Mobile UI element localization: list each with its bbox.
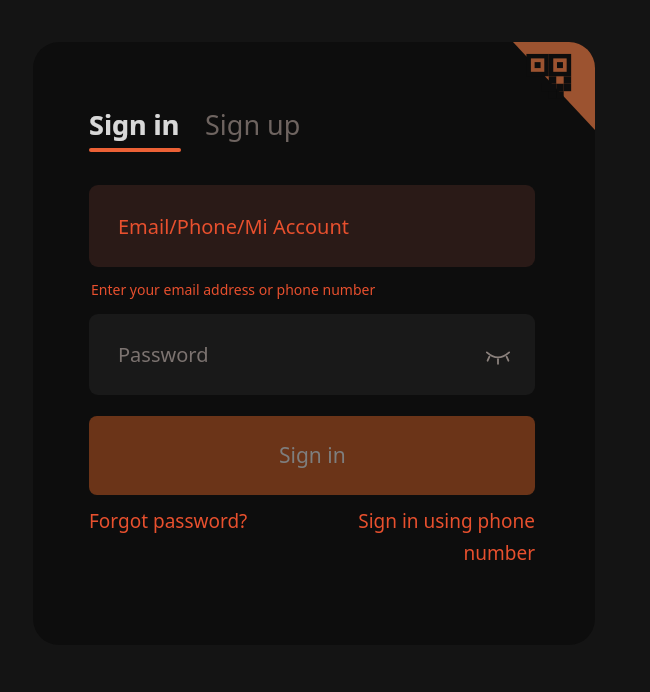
staticText: Sign in using phone number [335, 508, 535, 566]
button[interactable]: Forgot password? [89, 508, 248, 534]
button[interactable]: Sign in [89, 106, 181, 152]
button[interactable]: Sign in [89, 416, 535, 495]
staticText: Sign in [89, 106, 180, 143]
button[interactable]: Show password [481, 338, 515, 372]
button[interactable]: Password [89, 314, 535, 395]
button[interactable]: Email/Phone/Mi Account [89, 185, 535, 267]
staticText: Password [118, 341, 209, 368]
button[interactable]: Scan QR code to sign in [513, 42, 595, 130]
staticText: Sign up [205, 106, 301, 143]
staticText: Enter your email address or phone number [91, 280, 376, 299]
button[interactable]: Sign up [205, 106, 301, 143]
staticText: Forgot password? [89, 508, 248, 534]
staticText: Email/Phone/Mi Account [118, 213, 349, 240]
button[interactable]: Sign in using phone number [335, 508, 535, 566]
staticText: Sign in [279, 441, 346, 470]
